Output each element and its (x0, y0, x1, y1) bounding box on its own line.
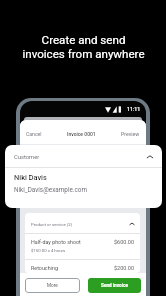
button[interactable]: Preview (121, 131, 140, 137)
staticText: Invoice 0001 (67, 131, 96, 137)
staticText: Retouching (31, 265, 58, 271)
staticText: $150.00 x 4 hours (31, 248, 66, 253)
staticText: Customer (14, 154, 40, 161)
button[interactable]: Retouching (25, 260, 140, 273)
button[interactable]: Product or service (2) (25, 213, 140, 233)
staticText: Product or service (2) (31, 222, 73, 227)
button[interactable]: Half-day photo shoot (25, 234, 140, 259)
staticText: Create and send invoices from anywhere (22, 33, 145, 61)
other: Collapse section (146, 153, 154, 161)
staticText: Half-day photo shoot (31, 239, 81, 245)
staticText: Send invoice (101, 283, 128, 289)
button[interactable]: More (25, 278, 80, 293)
other: Collapse section (129, 221, 135, 227)
staticText: $600.00 (114, 239, 134, 245)
staticText: More (47, 283, 58, 288)
button[interactable]: Cancel (26, 131, 42, 137)
staticText: $200.00 (114, 265, 134, 271)
button[interactable]: Send invoice (88, 278, 141, 293)
staticText: Niki Davis (14, 173, 47, 182)
staticText: Niki_Davis@example.com (14, 186, 88, 193)
button[interactable]: Customer (5, 145, 162, 167)
staticText: 11:11 (127, 106, 141, 112)
